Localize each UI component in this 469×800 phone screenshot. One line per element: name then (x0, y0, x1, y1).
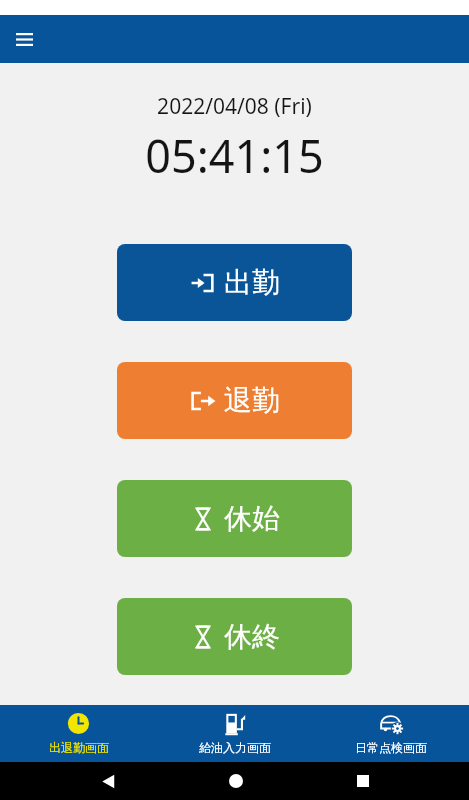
button[interactable]: Clock out (117, 362, 352, 439)
button[interactable]: Menu (8, 23, 40, 55)
staticText: 出退勤画面 (49, 740, 109, 755)
staticText: 休終 (224, 619, 280, 654)
staticText: 給油入力画面 (199, 740, 271, 755)
staticText: 休始 (224, 501, 280, 536)
button[interactable]: 出退勤画面 (0, 705, 157, 762)
button[interactable]: 給油入力画面 (157, 705, 313, 762)
button[interactable]: Back (100, 774, 115, 789)
staticText: 05:41:15 (145, 125, 324, 186)
staticText: 退勤 (224, 383, 280, 418)
staticText: 出勤 (224, 265, 280, 300)
staticText: 日常点検画面 (355, 740, 427, 755)
button[interactable]: Break end (117, 598, 352, 675)
staticText: 2022/04/08 (Fri) (157, 92, 312, 121)
button[interactable]: Clock in (117, 244, 352, 321)
button[interactable]: Break start (117, 480, 352, 557)
button[interactable]: 日常点検画面 (313, 705, 469, 762)
button[interactable]: Home (229, 774, 243, 788)
